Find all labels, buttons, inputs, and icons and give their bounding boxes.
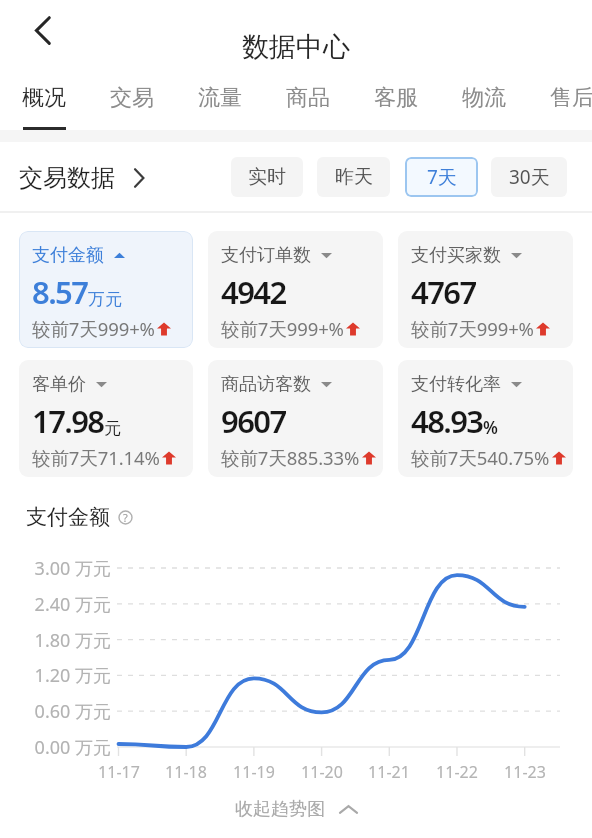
button[interactable]: 收起趋势图 [0,792,592,826]
staticText: 0.60 万元 [0,699,111,724]
staticText: 17.98 [32,400,104,442]
staticText: 交易 [110,84,154,112]
button[interactable]: 物流 [452,84,516,134]
staticText: ? [123,510,128,525]
button[interactable]: Back [14,7,62,55]
button[interactable]: 支付转化率 [398,360,573,477]
button[interactable]: 交易 [100,84,164,134]
staticText: 万元 [88,289,122,310]
staticText: 商品访客数 [221,373,311,396]
staticText: 8.57 [32,271,88,313]
staticText: 0.00 万元 [0,735,111,760]
button[interactable]: 概况 [12,84,76,134]
button[interactable]: 支付金额 [19,231,193,348]
staticText: 实时 [248,165,286,189]
staticText: 收起趋势图 [235,798,325,821]
staticText: 概况 [22,84,66,112]
staticText: 11-21 [359,761,419,783]
staticText: 较前7天999+% [411,316,534,341]
staticText: 支付买家数 [411,244,501,267]
staticText: 物流 [462,84,506,112]
staticText: 交易数据 [19,163,115,193]
staticText: 客服 [374,84,418,112]
staticText: 昨天 [335,165,373,189]
staticText: 较前7天999+% [221,316,344,341]
staticText: 支付订单数 [221,244,311,267]
staticText: 4767 [411,271,476,313]
staticText: 商品 [286,84,330,112]
staticText: 较前7天71.14% [32,445,160,470]
staticText: 支付转化率 [411,373,501,396]
button[interactable]: 30天 [491,157,567,197]
button[interactable]: 商品 [276,84,340,134]
staticText: 较前7天885.33% [221,445,360,470]
staticText: 2.40 万元 [0,592,111,617]
staticText: 4942 [221,271,286,313]
staticText: 售后 [550,84,592,112]
button[interactable]: 流量 [188,84,252,134]
staticText: 11-17 [89,761,149,783]
staticText: 9607 [221,400,286,442]
staticText: 客单价 [32,373,86,396]
staticText: 1.20 万元 [0,663,111,688]
staticText: 11-19 [224,761,284,783]
staticText: 元 [104,418,121,439]
staticText: 48.93 [411,400,483,442]
button[interactable]: 7天 [405,157,478,197]
staticText: 30天 [509,164,550,190]
button[interactable]: 客服 [364,84,428,134]
staticText: 数据中心 [0,30,592,64]
button[interactable]: 支付买家数 [398,231,573,348]
button[interactable]: 客单价 [19,360,193,477]
staticText: 1.80 万元 [0,628,111,653]
staticText: 11-22 [427,761,487,783]
staticText: 11-20 [292,761,352,783]
staticText: 7天 [427,164,457,190]
button[interactable]: 支付订单数 [208,231,383,348]
button[interactable]: Help [118,510,133,525]
button[interactable]: 商品访客数 [208,360,383,477]
button[interactable]: 昨天 [317,157,390,197]
staticText: 较前7天540.75% [411,445,550,470]
staticText: 3.00 万元 [0,556,111,581]
staticText: 11-18 [156,761,216,783]
button[interactable]: 售后 [540,84,592,134]
button[interactable]: 交易数据 [19,163,150,193]
staticText: 支付金额 [32,244,104,267]
staticText: 11-23 [495,761,555,783]
staticText: 较前7天999+% [32,316,155,341]
staticText: 流量 [198,84,242,112]
staticText: % [483,416,498,439]
button[interactable]: 实时 [231,157,303,197]
staticText: 支付金额 [26,504,110,530]
